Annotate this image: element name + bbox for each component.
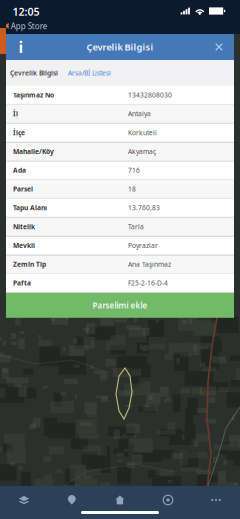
button[interactable]: Pusula bbox=[144, 492, 192, 508]
staticText: Mevkii bbox=[13, 241, 35, 250]
button[interactable]: Çevrelik Bilgisi bbox=[10, 60, 58, 86]
staticText: 716 bbox=[128, 166, 140, 175]
staticText: Ana Taşınmaz bbox=[128, 260, 171, 269]
button[interactable]: Katmanlar bbox=[0, 492, 48, 508]
button[interactable]: Kapat bbox=[207, 34, 231, 60]
staticText: Taşınmaz No bbox=[13, 90, 54, 99]
button[interactable]: Bilgi bbox=[9, 34, 33, 60]
staticText: Çevrelik Bilgisi bbox=[86, 41, 153, 53]
staticText: 13.760,83 bbox=[128, 203, 160, 212]
staticText: Korkuteli bbox=[128, 128, 157, 137]
staticText: Akyamaç bbox=[128, 147, 156, 156]
button[interactable]: Ana sayfa bbox=[96, 492, 144, 508]
staticText: Arsa/Bİ Listesi bbox=[68, 69, 111, 77]
staticText: 12:05 bbox=[12, 5, 39, 19]
staticText: Ada bbox=[13, 166, 26, 175]
staticText: İl bbox=[13, 109, 18, 118]
staticText: Pafta bbox=[13, 278, 31, 287]
staticText: Tapu Alanı bbox=[13, 203, 47, 212]
staticText: App Store bbox=[11, 21, 48, 31]
staticText: İlçe bbox=[13, 128, 25, 137]
button[interactable]: Daha fazla bbox=[192, 492, 240, 508]
staticText: F25-2-16-D-4 bbox=[128, 278, 168, 287]
staticText: Poyrazlar bbox=[128, 241, 158, 250]
staticText: Antalya bbox=[128, 109, 151, 118]
button[interactable]: Arsa/Bİ Listesi bbox=[68, 60, 111, 86]
staticText: Çevrelik Bilgisi bbox=[10, 69, 58, 77]
staticText: 18 bbox=[128, 184, 136, 193]
staticText: Mahalle/Köy bbox=[13, 147, 54, 156]
staticText: Parsel bbox=[13, 184, 33, 193]
button[interactable]: Parselimi ekle bbox=[6, 293, 234, 318]
staticText: Zemin Tip bbox=[13, 260, 46, 269]
staticText: Nitelik bbox=[13, 222, 35, 231]
button[interactable]: Konum bbox=[48, 492, 96, 508]
staticText: Tarla bbox=[128, 222, 144, 231]
staticText: 13432808030 bbox=[128, 90, 172, 99]
staticText: Parselimi ekle bbox=[92, 300, 147, 311]
